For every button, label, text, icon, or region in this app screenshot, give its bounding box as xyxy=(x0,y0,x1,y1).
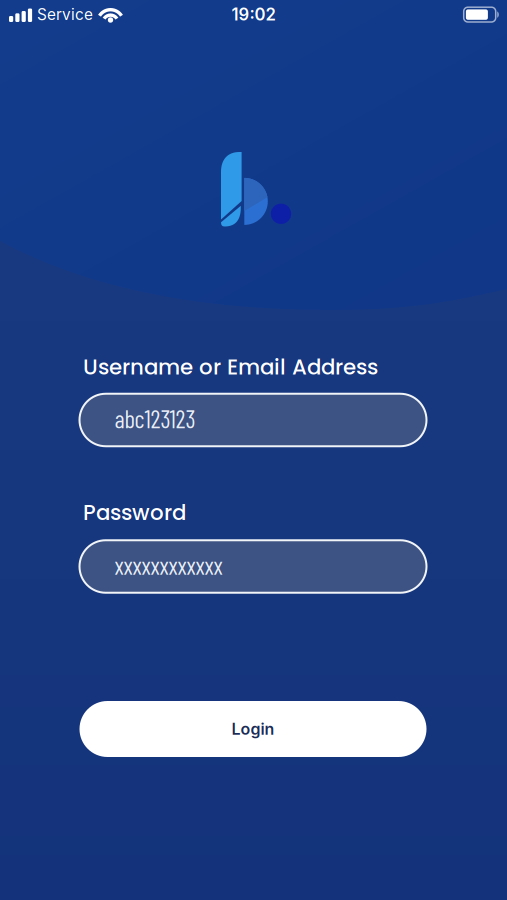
staticText: xxxxxxxxxxxx xyxy=(114,550,222,580)
staticText: 19:02 xyxy=(231,4,275,25)
staticText: Service xyxy=(37,5,93,24)
button[interactable]: xxxxxxxxxxxx xyxy=(79,540,426,593)
staticText: abc123123 xyxy=(114,404,195,433)
button[interactable]: abc123123 xyxy=(79,394,426,446)
staticText: Password xyxy=(83,498,186,527)
button[interactable]: Login xyxy=(79,701,426,757)
staticText: Username or Email Address xyxy=(83,352,378,382)
staticText: Login xyxy=(231,719,274,739)
